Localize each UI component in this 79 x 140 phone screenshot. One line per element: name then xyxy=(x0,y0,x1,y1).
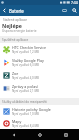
button[interactable]: HTC Checkin Service xyxy=(0,43,79,56)
button[interactable]: Zoe xyxy=(0,69,79,82)
button[interactable]: Search xyxy=(69,5,79,16)
button[interactable]: Mapy xyxy=(0,118,79,129)
staticText: Nyní využívá 6,3 MB xyxy=(12,63,39,67)
staticText: Stažené aplikace xyxy=(3,18,28,22)
staticText: Mapy xyxy=(12,119,22,124)
staticText: Zoe xyxy=(12,71,19,76)
staticText: Zprávy a počasí xyxy=(12,84,39,89)
staticText: Nyní využívá 2,1 MB xyxy=(12,89,39,93)
button[interactable]: Služby Google Play xyxy=(0,56,79,69)
staticText: HTC Checkin Service xyxy=(12,45,47,50)
button[interactable]: Back xyxy=(0,129,27,140)
button[interactable]: Navigate up xyxy=(0,5,9,16)
staticText: Spuštěné aplikace xyxy=(2,38,29,42)
staticText: 7:34 xyxy=(71,0,78,5)
staticText: Nyní využívá 1,0 MB xyxy=(12,112,39,116)
button[interactable]: Historie polohy Google xyxy=(0,105,79,118)
button[interactable]: Nejlépe xyxy=(0,22,79,33)
button[interactable]: Zprávy a počasí xyxy=(0,82,79,95)
staticText: Služby Google Play xyxy=(12,58,44,63)
button[interactable]: Storage xyxy=(59,5,69,16)
staticText: Úspora energie baterie xyxy=(2,29,37,33)
staticText: Nejlépe xyxy=(2,22,22,29)
staticText: Nyní využívá 4,0 MB xyxy=(12,76,39,80)
staticText: Nyní využívá 8,4 MB xyxy=(12,124,39,128)
staticText: Nyní využívá 1,2 MB xyxy=(12,50,39,54)
staticText: Služby ukládání do mezipaměti xyxy=(2,100,47,104)
staticText: Historie polohy Google xyxy=(12,107,51,112)
button[interactable]: Home xyxy=(27,129,53,140)
button[interactable]: Recent apps xyxy=(53,129,79,140)
staticText: Baterie xyxy=(9,8,59,14)
